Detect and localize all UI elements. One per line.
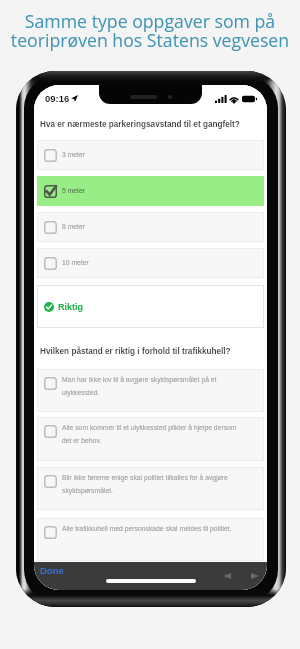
- button[interactable]: Alle trafikkuhell med personskade skal m…: [37, 518, 264, 561]
- button[interactable]: 5 meter: [37, 176, 264, 206]
- button[interactable]: Next field: [251, 573, 259, 579]
- staticText: Blir ikke førerne enige skal politiet ti…: [62, 474, 228, 495]
- button[interactable]: 10 meter: [37, 248, 264, 278]
- staticText: 10 meter: [62, 259, 89, 267]
- staticText: 5 meter: [62, 187, 86, 195]
- staticText: 3 meter: [62, 151, 86, 159]
- staticText: Alle trafikkuhell med personskade skal m…: [62, 525, 232, 533]
- staticText: Hva er nærmeste parkeringsavstand til et…: [40, 120, 240, 129]
- button[interactable]: 8 meter: [37, 212, 264, 242]
- staticText: Samme type oppgaver som på teoriprøven h…: [0, 9, 300, 52]
- staticText: Hvilken påstand er riktig i forhold til …: [40, 347, 231, 356]
- button[interactable]: Riktig: [37, 285, 264, 328]
- staticText: Alle som kommer til et ulykkessted plikt…: [62, 424, 237, 445]
- button[interactable]: Done: [40, 565, 64, 576]
- staticText: Man har ikke lov til å avgjøre skyldspør…: [62, 376, 217, 397]
- button[interactable]: Alle som kommer til et ulykkessted plikt…: [37, 417, 264, 461]
- staticText: Riktig: [58, 302, 84, 312]
- staticText: 8 meter: [62, 223, 86, 231]
- button[interactable]: Previous field: [223, 573, 231, 579]
- button[interactable]: Man har ikke lov til å avgjøre skyldspør…: [37, 369, 264, 412]
- button[interactable]: 3 meter: [37, 140, 264, 170]
- button[interactable]: Blir ikke førerne enige skal politiet ti…: [37, 467, 264, 510]
- staticText: 09:16: [45, 93, 70, 104]
